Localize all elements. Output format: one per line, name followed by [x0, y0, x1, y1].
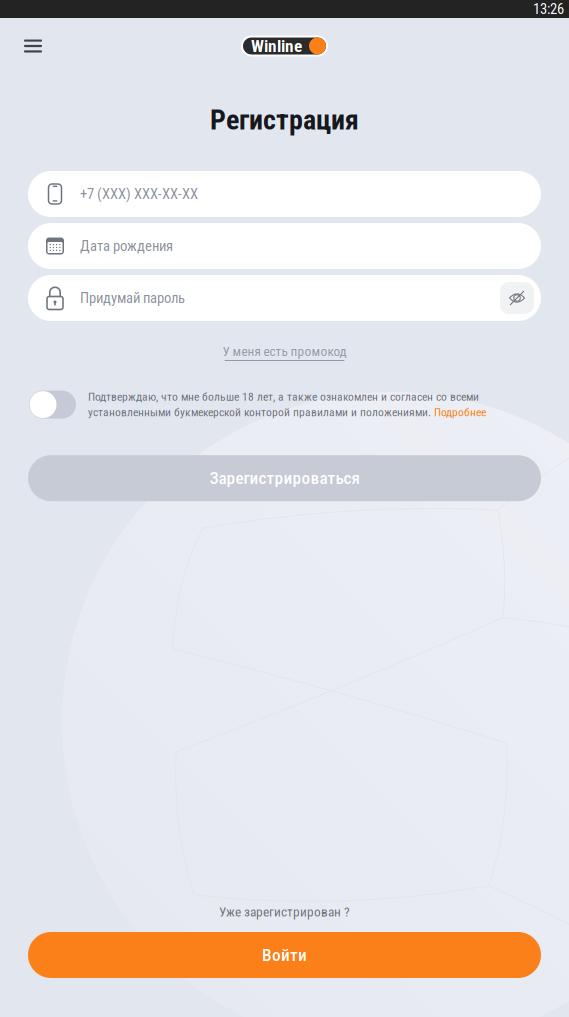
button[interactable]: Меню — [15, 28, 51, 64]
staticText: У меня есть промокод — [222, 344, 346, 359]
staticText: Уже зарегистрирован ? — [219, 904, 350, 920]
staticText: Winline — [251, 36, 302, 56]
staticText: Подтверждаю, что мне больше 18 лет, а та… — [88, 390, 479, 404]
staticText: 13:26 — [533, 0, 564, 18]
staticText: +7 (XXX) XXX-XX-XX — [80, 185, 198, 203]
staticText: Зарегистрироваться — [209, 468, 359, 488]
button[interactable]: Войти — [28, 932, 541, 978]
staticText: Подробнее — [434, 406, 486, 419]
button[interactable]: Зарегистрироваться — [28, 455, 541, 501]
button[interactable]: Winline — [241, 35, 328, 56]
staticText: Придумай пароль — [80, 289, 185, 307]
staticText: Регистрация — [210, 104, 359, 136]
staticText: Войти — [262, 945, 307, 965]
staticText: установленными букмекерской конторой пра… — [88, 406, 431, 419]
button[interactable]: Показать пароль — [500, 282, 534, 314]
staticText: Дата рождения — [80, 237, 173, 255]
button[interactable]: Подтверждаю, что мне больше 18 лет — [29, 391, 76, 419]
button[interactable]: У меня есть промокод — [222, 345, 346, 361]
